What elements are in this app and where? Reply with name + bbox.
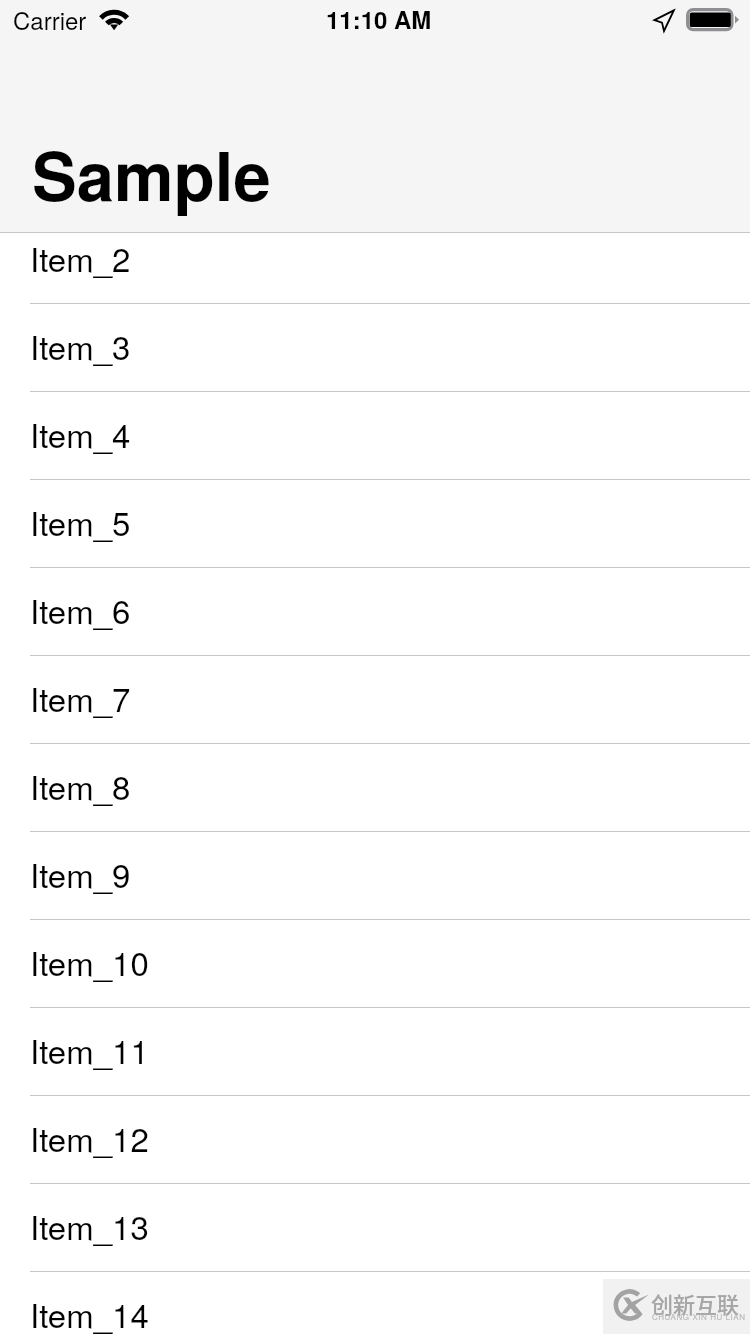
button[interactable]: Item_11 — [0, 1008, 750, 1096]
staticText: Item_4 — [30, 410, 131, 457]
button[interactable]: Item_10 — [0, 920, 750, 1008]
staticText: Item_10 — [30, 938, 149, 985]
staticText: CHUANG XIN HU LIAN — [652, 1311, 746, 1322]
staticText: Item_9 — [30, 850, 131, 897]
other: Wi-Fi — [100, 9, 129, 31]
staticText: 创新互联 — [651, 1287, 740, 1319]
other: Battery full — [686, 8, 738, 32]
button[interactable]: Item_5 — [0, 480, 750, 568]
other: Location services — [654, 10, 674, 31]
button[interactable]: Item_14 — [0, 1272, 750, 1334]
staticText: Item_12 — [30, 1114, 149, 1161]
staticText: Item_13 — [30, 1202, 149, 1249]
staticText: Sample — [32, 126, 271, 222]
button[interactable]: Item_9 — [0, 832, 750, 920]
button[interactable]: Item_13 — [0, 1184, 750, 1272]
button[interactable]: Item_12 — [0, 1096, 750, 1184]
button[interactable]: Item_6 — [0, 568, 750, 656]
staticText: Item_5 — [30, 498, 131, 545]
button[interactable]: Item_8 — [0, 744, 750, 832]
staticText: Item_8 — [30, 762, 131, 809]
staticText: Item_3 — [30, 322, 131, 369]
button[interactable]: Item_3 — [0, 304, 750, 392]
staticText: Item_14 — [30, 1290, 149, 1334]
staticText: Item_11 — [30, 1026, 149, 1073]
staticText: Item_6 — [30, 586, 131, 633]
staticText: Item_2 — [30, 234, 131, 281]
button[interactable]: Item_2 — [0, 216, 750, 304]
button[interactable]: Item_4 — [0, 392, 750, 480]
staticText: 11:10 AM — [326, 2, 432, 36]
staticText: Carrier — [13, 2, 87, 36]
staticText: Item_7 — [30, 674, 131, 721]
button[interactable]: Item_7 — [0, 656, 750, 744]
